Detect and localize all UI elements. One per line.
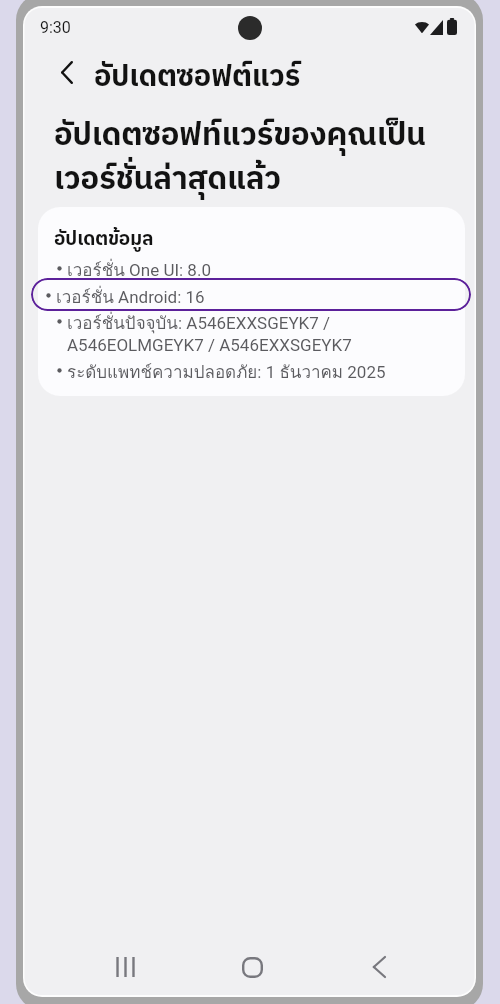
staticText: อัปเดตซอฟต์แวร์ [94,54,301,102]
staticText: เวอร์ชั่นล่าสุดแล้ว [54,154,281,205]
button[interactable]: Back [357,945,401,989]
staticText: เวอร์ชั่น Android: 16 [56,283,205,310]
staticText: ระดับแพทช์ความปลอดภัย: 1 ธันวาคม 2025 [67,358,386,385]
staticText: เวอร์ชั่น One UI: 8.0 [67,256,211,283]
button[interactable]: Home [230,945,274,989]
button[interactable]: อัปเดตข้อมูล [38,207,465,396]
staticText: เวอร์ชั่นปัจจุบัน: A546EXXSGEYK7 / A546E… [67,309,352,355]
button[interactable]: Recent apps [103,945,147,989]
staticText: 9:30 [40,18,71,37]
staticText: อัปเดตซอฟท์แวร์ของคุณเป็น [54,110,426,161]
staticText: อัปเดตข้อมูล [54,224,154,255]
button[interactable]: Back [49,54,85,90]
